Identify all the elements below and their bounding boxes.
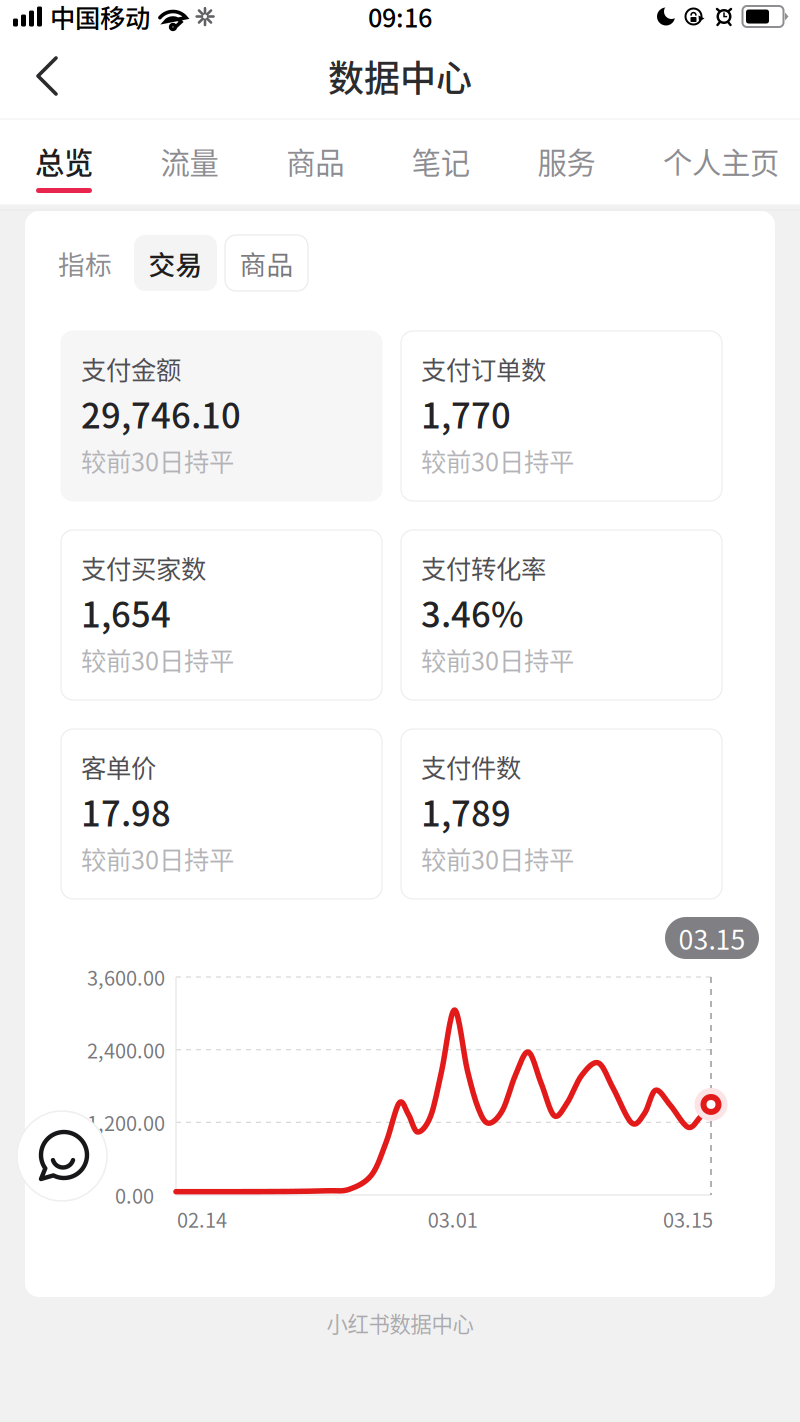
staticText: 支付件数 [421, 748, 521, 785]
button[interactable]: 支付买家数 [61, 530, 382, 700]
staticText: 09:16 [368, 0, 432, 35]
staticText: 总览 [35, 140, 93, 182]
staticText: 较前30日持平 [421, 442, 574, 479]
staticText: 03.15 [678, 919, 745, 957]
button[interactable]: Back [0, 47, 79, 105]
button[interactable]: 笔记 [412, 130, 470, 203]
staticText: 29,746.10 [81, 388, 241, 439]
staticText: 0.00 [115, 1180, 154, 1209]
staticText: 交易 [148, 244, 202, 282]
button[interactable]: 服务 [537, 130, 595, 203]
staticText: 较前30日持平 [421, 641, 574, 678]
button[interactable]: Customer service [17, 1111, 107, 1201]
button[interactable]: 支付金额 [61, 331, 382, 501]
staticText: 指标 [58, 244, 112, 282]
staticText: 笔记 [412, 140, 470, 182]
staticText: 1,770 [421, 388, 511, 439]
staticText: 支付转化率 [421, 549, 546, 586]
staticText: 较前30日持平 [421, 840, 574, 877]
staticText: 17.98 [81, 786, 171, 837]
button[interactable]: 交易 [134, 235, 217, 291]
staticText: 商品 [286, 140, 344, 182]
staticText: 1,789 [421, 786, 511, 837]
button[interactable]: 商品 [286, 130, 344, 203]
staticText: 流量 [161, 140, 219, 182]
staticText: 1,654 [81, 587, 171, 638]
staticText: 03.01 [428, 1204, 478, 1233]
staticText: 小红书数据中心 [326, 1308, 473, 1338]
staticText: 2,400.00 [87, 1035, 165, 1064]
button[interactable]: 客单价 [61, 729, 382, 899]
staticText: 较前30日持平 [81, 442, 234, 479]
staticText: 客单价 [81, 748, 156, 785]
button[interactable]: 支付订单数 [401, 331, 722, 501]
staticText: 服务 [537, 140, 595, 182]
staticText: 支付买家数 [81, 549, 206, 586]
staticText: 商品 [239, 244, 293, 282]
staticText: 数据中心 [328, 50, 472, 102]
staticText: 03.15 [663, 1204, 713, 1233]
staticText: 中国移动 [50, 0, 150, 35]
button[interactable]: 商品 [225, 235, 308, 291]
staticText: 3,600.00 [87, 962, 165, 991]
staticText: 支付金额 [81, 350, 181, 387]
button[interactable]: 个人主页 [663, 130, 779, 203]
staticText: 支付订单数 [421, 350, 546, 387]
button[interactable]: 总览 [35, 130, 93, 203]
staticText: 较前30日持平 [81, 641, 234, 678]
staticText: 个人主页 [663, 140, 779, 182]
button[interactable]: 支付转化率 [401, 530, 722, 700]
staticText: 3.46% [421, 587, 524, 638]
button[interactable]: 支付件数 [401, 729, 722, 899]
staticText: 较前30日持平 [81, 840, 234, 877]
staticText: 1,200.00 [87, 1108, 165, 1137]
staticText: 02.14 [177, 1204, 227, 1233]
button[interactable]: 流量 [161, 130, 219, 203]
